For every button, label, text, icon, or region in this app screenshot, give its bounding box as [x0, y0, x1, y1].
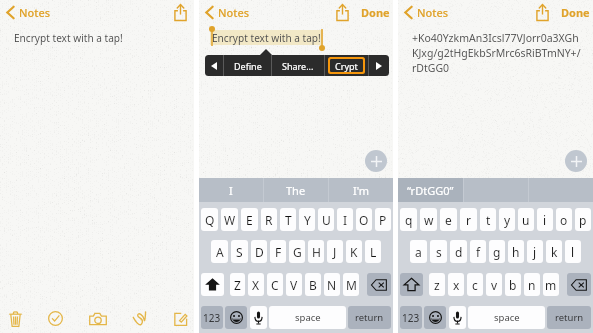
button[interactable]: k [546, 240, 562, 263]
button[interactable]: T [280, 208, 296, 231]
button[interactable]: Share [333, 3, 352, 22]
button[interactable]: Done [561, 5, 590, 20]
button[interactable]: r [460, 208, 477, 231]
button[interactable]: Notes [205, 5, 250, 20]
button[interactable]: Notes [6, 5, 51, 20]
button[interactable]: Notes [404, 5, 449, 20]
staticText: B [309, 277, 317, 293]
button[interactable]: Q [201, 208, 218, 231]
staticText: w [424, 212, 434, 228]
button[interactable]: Dictate [250, 306, 267, 329]
button[interactable]: G [289, 240, 305, 263]
button[interactable]: P [375, 208, 391, 231]
button[interactable]: Camera [82, 307, 113, 330]
button[interactable]: Checklist [40, 307, 71, 330]
button[interactable]: x [448, 273, 464, 296]
button[interactable]: Compose [165, 307, 196, 330]
button[interactable]: Emoji [225, 306, 247, 329]
button[interactable]: Previous [205, 55, 223, 76]
button[interactable]: 123 [201, 306, 223, 329]
button[interactable]: “rDtGG0” [398, 178, 463, 202]
button[interactable]: V [286, 273, 302, 296]
button[interactable]: z [429, 273, 445, 296]
button[interactable]: Z [230, 273, 245, 296]
staticText: p [579, 212, 587, 228]
button[interactable]: B [305, 273, 321, 296]
button[interactable]: g [489, 240, 505, 263]
button[interactable]: Done [361, 5, 390, 20]
button[interactable]: N [324, 273, 340, 296]
button[interactable]: Add [365, 150, 387, 172]
button[interactable]: space [468, 306, 545, 329]
button[interactable]: Y [299, 208, 315, 231]
button[interactable]: i [537, 208, 553, 231]
button[interactable]: X [248, 273, 264, 296]
button[interactable]: M [343, 273, 359, 296]
button[interactable]: K [346, 240, 362, 263]
button[interactable]: a [410, 240, 427, 263]
button[interactable]: Markup [124, 307, 155, 330]
button[interactable]: E [241, 208, 258, 231]
button[interactable]: return [348, 306, 391, 329]
button[interactable]: Crypt [328, 57, 365, 74]
button[interactable]: p [575, 208, 591, 231]
button[interactable]: f [470, 240, 486, 263]
button[interactable]: The [264, 178, 328, 202]
button[interactable]: l [565, 240, 581, 263]
button[interactable]: h [508, 240, 524, 263]
button[interactable]: o [556, 208, 572, 231]
button[interactable]: I [337, 208, 353, 231]
staticText: Y [304, 212, 311, 228]
button[interactable]: e [440, 208, 457, 231]
button[interactable]: R [261, 208, 277, 231]
button[interactable]: L [365, 240, 381, 263]
button[interactable]: return [547, 306, 591, 329]
button[interactable]: Add [565, 150, 587, 172]
button[interactable]: J [327, 240, 343, 263]
button[interactable]: U [318, 208, 334, 231]
button[interactable]: s [430, 240, 447, 263]
button[interactable]: m [543, 273, 559, 296]
button[interactable]: w [420, 208, 437, 231]
button[interactable]: D [251, 240, 267, 263]
button[interactable]: A [211, 240, 228, 263]
button[interactable]: Backspace [567, 273, 591, 296]
button[interactable]: space [269, 306, 346, 329]
button[interactable]: Shift [400, 273, 423, 296]
button[interactable]: q [400, 208, 417, 231]
staticText: 123 [402, 311, 420, 325]
button[interactable]: Define [224, 55, 271, 76]
button[interactable]: C [267, 273, 283, 296]
button[interactable]: Emoji [424, 306, 446, 329]
button[interactable]: Share... [272, 55, 324, 76]
button[interactable]: I'm [329, 178, 393, 202]
button[interactable]: F [270, 240, 286, 263]
button[interactable]: W [221, 208, 238, 231]
button[interactable]: Dictate [449, 306, 466, 329]
button[interactable]: v [486, 273, 502, 296]
button[interactable]: Backspace [367, 273, 391, 296]
button[interactable]: c [467, 273, 483, 296]
button[interactable]: Shift [201, 273, 224, 296]
button[interactable]: Delete [0, 307, 31, 330]
staticText: m [545, 277, 557, 293]
button[interactable]: Next [369, 55, 389, 76]
button[interactable]: j [527, 240, 543, 263]
button[interactable]: Share [171, 3, 190, 22]
button[interactable]: 123 [400, 306, 422, 329]
button[interactable]: O [356, 208, 372, 231]
button[interactable]: S [231, 240, 248, 263]
button[interactable]: b [505, 273, 521, 296]
button[interactable]: u [518, 208, 534, 231]
button[interactable]: I [199, 178, 263, 202]
staticText: space [295, 311, 321, 324]
button[interactable]: n [524, 273, 540, 296]
button[interactable]: H [308, 240, 324, 263]
button[interactable]: t [480, 208, 496, 231]
button[interactable]: y [499, 208, 515, 231]
button[interactable]: Share [533, 3, 552, 22]
other: Backspace [371, 279, 387, 291]
button[interactable]: d [450, 240, 467, 263]
